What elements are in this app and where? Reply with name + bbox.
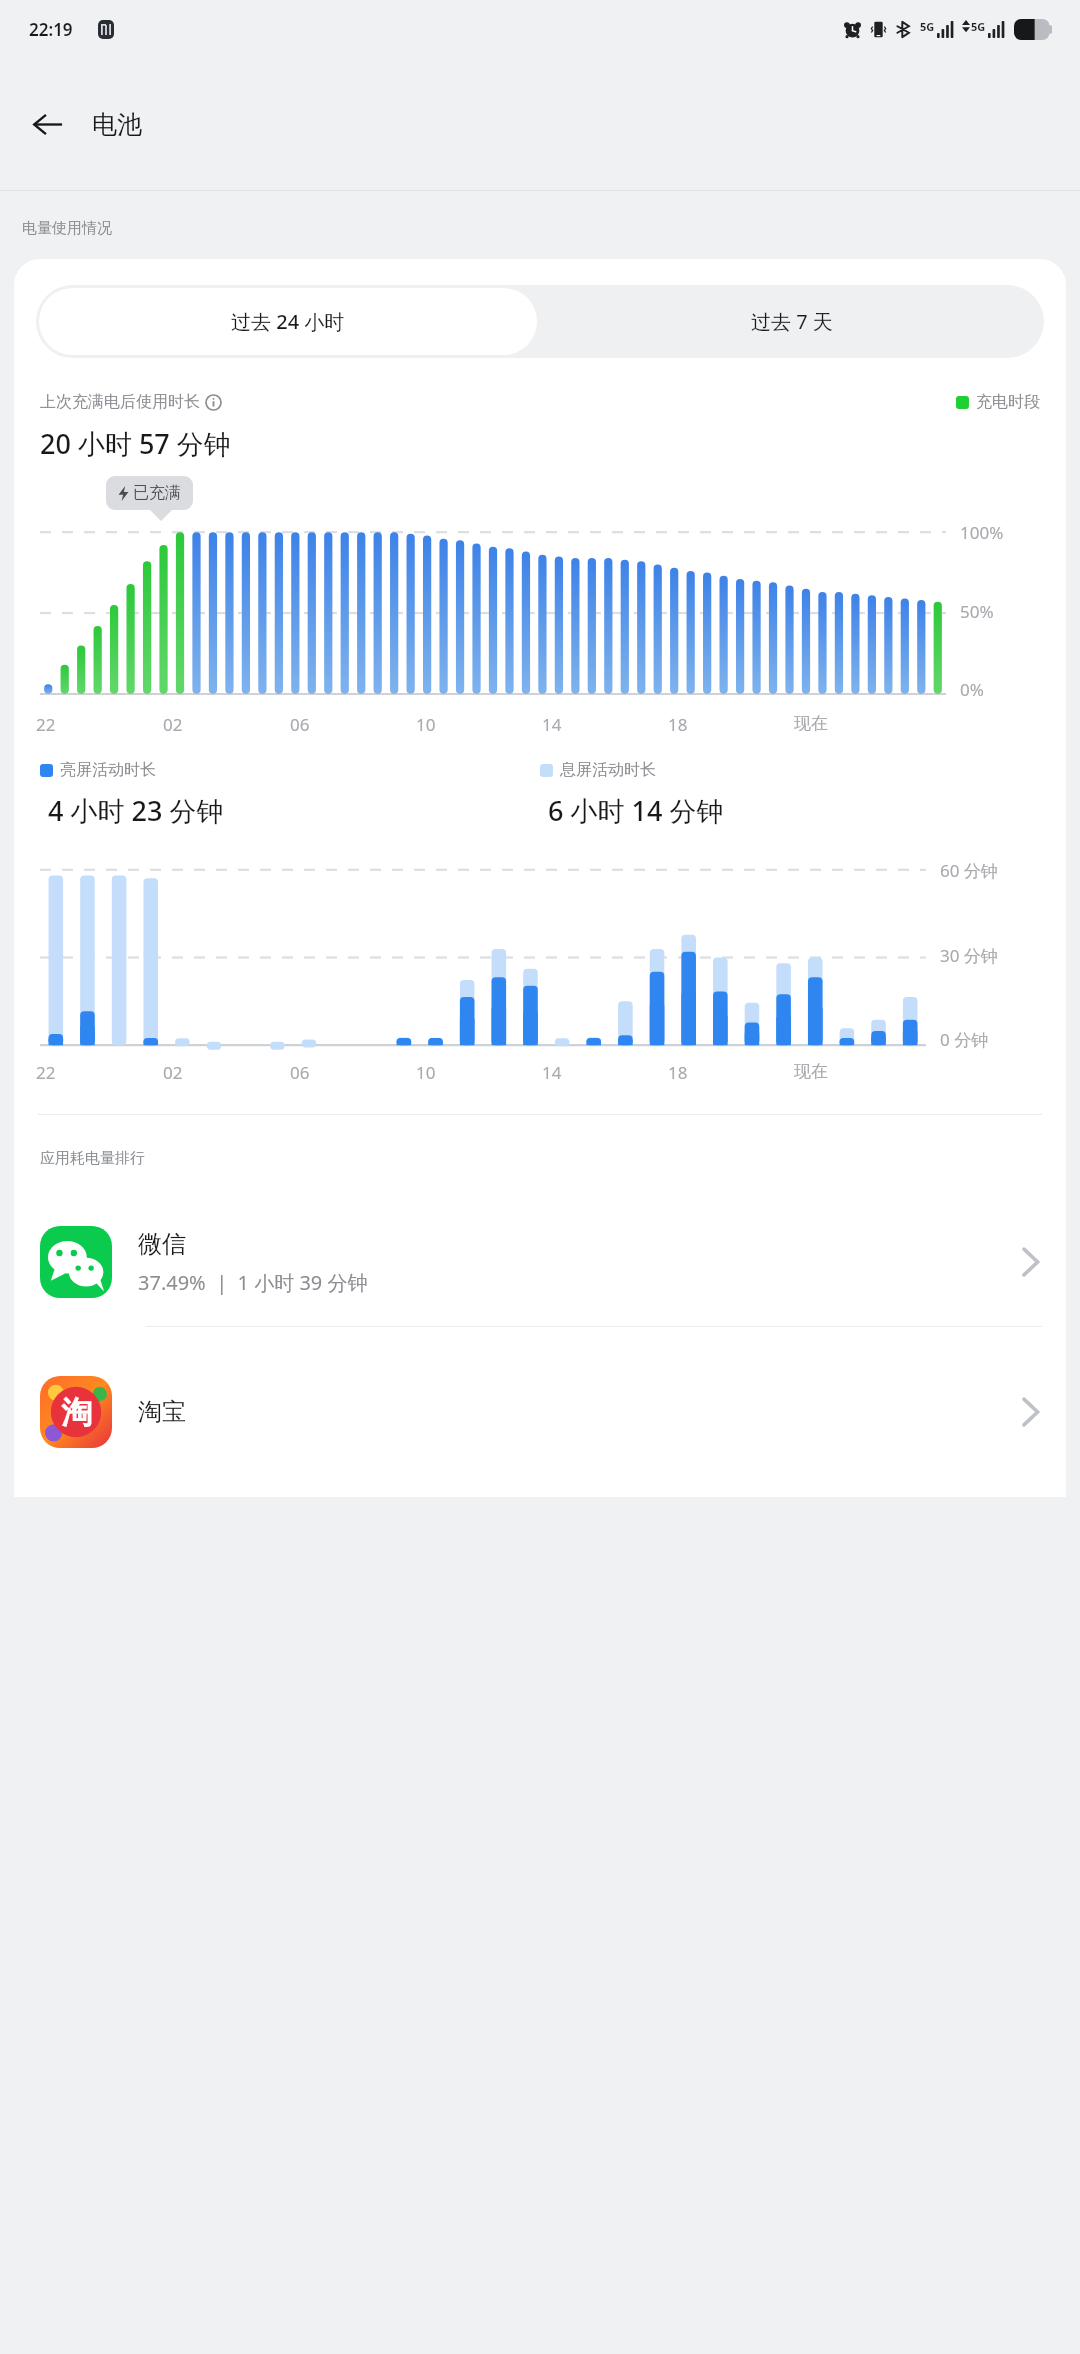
staticText: 过去 24 小时 [231,308,345,335]
staticText: 18 [668,713,688,736]
staticText: 100% [960,521,1004,544]
staticText: 06 [290,713,310,736]
staticText: 上次充满电后使用时长 [40,392,200,412]
staticText: 30 分钟 [940,944,998,967]
button[interactable]: Back [14,91,80,157]
staticText: 60 分钟 [940,859,998,882]
staticText: 06 [290,1061,310,1084]
staticText: 22:19 [29,18,73,41]
staticText: 0% [960,678,984,701]
staticText: 14 [542,1061,562,1084]
staticText: 过去 7 天 [751,308,833,335]
staticText: 22 [36,713,56,736]
button[interactable]: 淘 [14,1327,1066,1497]
staticText: 充电时段 [976,392,1040,412]
staticText: 应用耗电量排行 [40,1149,145,1168]
button[interactable]: 过去 7 天 [540,285,1044,358]
staticText: 4 小时 23 分钟 [48,792,224,829]
staticText: 50% [960,600,994,623]
staticText: 0 分钟 [940,1028,989,1051]
staticText: 14 [542,713,562,736]
staticText: 02 [163,713,183,736]
staticText: 5G [920,19,935,34]
staticText: 淘 [61,1393,92,1432]
staticText: 电池 [92,109,142,140]
staticText: 微信 [138,1229,186,1259]
staticText: 已充满 [133,483,181,503]
staticText: 10 [416,1061,436,1084]
other: Details [1020,1393,1042,1431]
staticText: 10 [416,713,436,736]
staticText: 20 小时 57 分钟 [40,425,231,462]
staticText: 37.49% | 1 小时 39 分钟 [138,1269,368,1296]
staticText: 5G [971,19,986,34]
button[interactable]: 过去 24 小时 [39,288,537,355]
other: Details [1020,1243,1042,1281]
staticText: 息屏活动时长 [560,760,656,780]
staticText: 现在 [794,713,828,734]
staticText: 6 小时 14 分钟 [548,792,724,829]
button[interactable]: 微信 [14,1198,1066,1326]
staticText: 18 [668,1061,688,1084]
staticText: 02 [163,1061,183,1084]
staticText: 淘宝 [138,1397,186,1427]
staticText: 现在 [794,1061,828,1082]
staticText: 电量使用情况 [22,219,112,238]
staticText: 亮屏活动时长 [60,760,156,780]
staticText: 22 [36,1061,56,1084]
